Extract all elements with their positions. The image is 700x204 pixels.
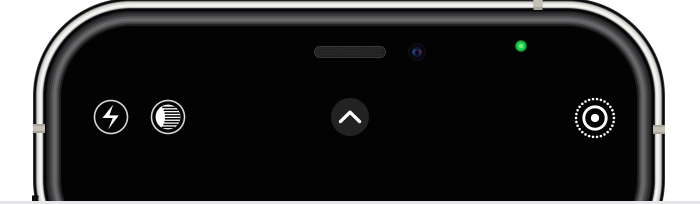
button[interactable]: Night mode <box>0 0 700 204</box>
button[interactable]: Live Photo <box>0 0 700 204</box>
button[interactable]: Show more camera controls <box>0 0 700 204</box>
button[interactable]: Flash <box>0 0 700 204</box>
